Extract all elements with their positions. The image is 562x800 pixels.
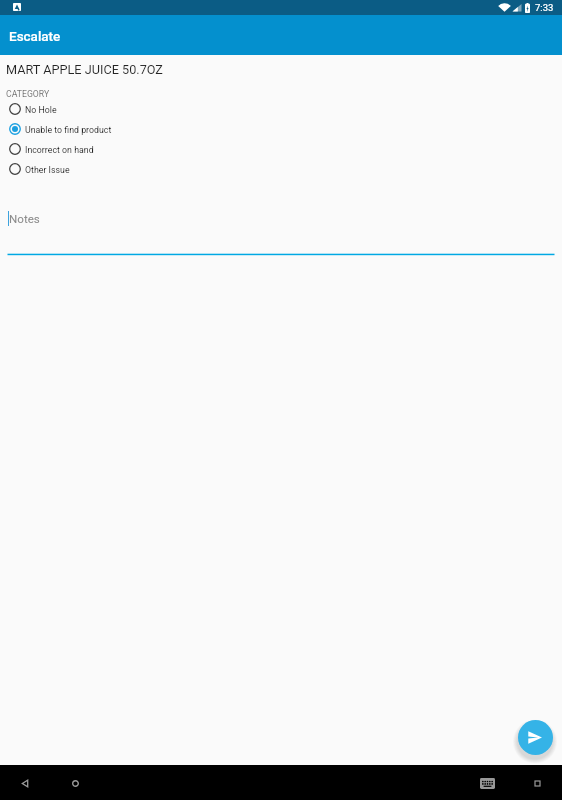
button[interactable]: No Hole [0,99,562,119]
staticText: No Hole [25,105,57,115]
staticText: CATEGORY [6,89,50,99]
button[interactable]: Incorrect on hand [0,139,562,159]
staticText: 7:33 [535,2,554,13]
button[interactable]: Other Issue [0,159,562,179]
button[interactable]: Home [65,773,85,793]
staticText: Incorrect on hand [25,145,94,155]
button[interactable]: Unable to find product [0,119,562,139]
button[interactable]: Send [518,720,553,755]
staticText: Unable to find product [25,125,112,135]
button[interactable]: Back [15,773,35,793]
button[interactable]: Show keyboard [476,774,498,792]
staticText: Escalate [9,28,61,44]
button[interactable]: Recent apps [529,775,545,791]
staticText: Notes [9,212,40,226]
staticText: Other Issue [25,165,70,175]
staticText: MART APPLE JUICE 50.7OZ [6,62,163,77]
button[interactable]: Notes [0,205,562,257]
